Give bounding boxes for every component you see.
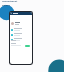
- button[interactable]: [25, 45, 30, 47]
- button[interactable]: [11, 33, 31, 36]
- button[interactable]: [11, 28, 31, 31]
- button[interactable]: [11, 22, 31, 25]
- button[interactable]: [11, 38, 31, 41]
- staticText: Appointment Details: [2, 0, 18, 6]
